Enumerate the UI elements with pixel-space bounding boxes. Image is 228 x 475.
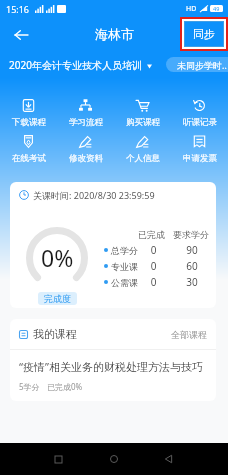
staticText: 总学分 — [111, 245, 138, 256]
button[interactable]: Back — [8, 22, 33, 47]
staticText: 0% — [41, 242, 74, 273]
staticText: 0 — [138, 243, 169, 257]
staticText: 我的课程 — [33, 327, 77, 341]
staticText: 公需课 — [111, 277, 138, 288]
staticText: 90 — [173, 243, 211, 257]
button[interactable]: 在线考试 — [0, 134, 57, 170]
staticText: 个人信息 — [126, 153, 160, 164]
staticText: 专业课 — [111, 261, 138, 272]
button[interactable]: 未同步学时‥ — [166, 57, 228, 72]
staticText: 未同步学时‥ — [177, 59, 227, 71]
staticText: 0 — [138, 259, 169, 273]
staticText: 2020年会计专业技术人员培训 — [9, 58, 142, 72]
button[interactable]: Recent apps — [42, 443, 74, 475]
staticText: 修改资料 — [69, 153, 103, 164]
staticText: 30 — [173, 275, 211, 289]
staticText: 海林市 — [95, 26, 134, 42]
staticText: HD — [186, 4, 197, 14]
staticText: 学习流程 — [69, 117, 103, 128]
button[interactable]: Home — [98, 443, 130, 475]
button[interactable]: 下载课程 — [0, 98, 57, 134]
staticText: 关课时间: 2020/8/30 23:59:59 — [33, 189, 155, 201]
staticText: 要求学分 — [171, 229, 211, 240]
staticText: “疫情”相关业务的财税处理方法与技巧 — [19, 359, 203, 374]
staticText: 已完成 — [136, 229, 167, 240]
staticText: 完成度 — [44, 293, 71, 304]
button[interactable]: 个人信息 — [114, 134, 171, 170]
staticText: 购买课程 — [126, 117, 160, 128]
staticText: 15:16 — [6, 3, 30, 15]
button[interactable]: 听课记录 — [171, 98, 228, 134]
staticText: 下载课程 — [12, 117, 46, 128]
staticText: 49 — [213, 5, 220, 12]
staticText: 申请发票 — [183, 153, 217, 164]
button[interactable]: Back — [152, 443, 184, 475]
staticText: 同步 — [193, 27, 215, 41]
staticText: 60 — [173, 259, 211, 273]
staticText: 0 — [138, 275, 169, 289]
staticText: 在线考试 — [12, 153, 46, 164]
button[interactable]: 购买课程 — [114, 98, 171, 134]
button[interactable]: “疫情”相关业务的财税处理方法与技巧 — [10, 350, 216, 401]
button[interactable]: 全部课程 — [171, 329, 207, 340]
button[interactable]: 同步 — [184, 21, 224, 47]
staticText: 已完成0% — [47, 381, 83, 392]
staticText: 5学分 — [19, 381, 40, 392]
button[interactable]: 学习流程 — [57, 98, 114, 134]
button[interactable]: 修改资料 — [57, 134, 114, 170]
button[interactable]: 申请发票 — [171, 134, 228, 170]
staticText: 听课记录 — [183, 117, 217, 128]
